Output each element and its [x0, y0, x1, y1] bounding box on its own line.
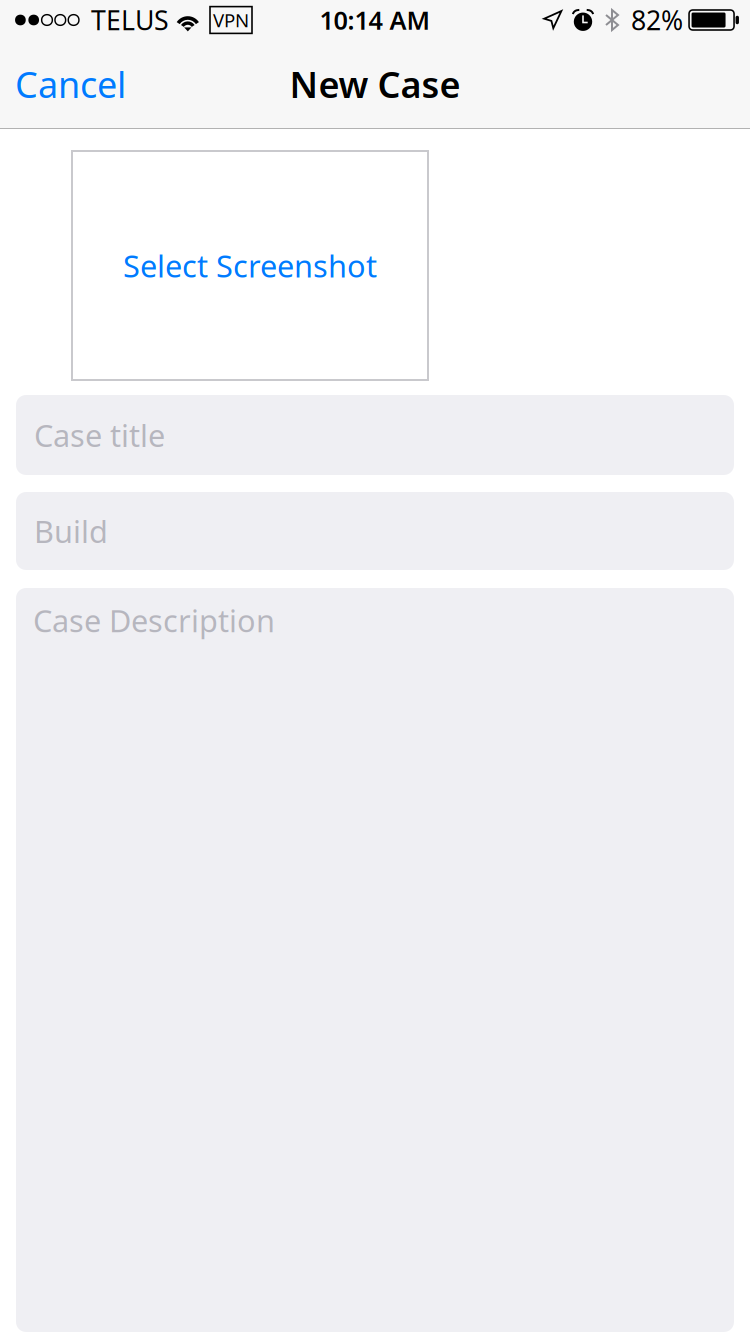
staticText: Case Description [33, 600, 275, 641]
staticText: 82% [631, 2, 683, 38]
staticText: Cancel [15, 60, 126, 108]
staticText: Select Screenshot [123, 245, 377, 286]
staticText: New Case [289, 60, 460, 108]
button[interactable]: Cancel [0, 40, 141, 128]
staticText: Build [34, 511, 108, 551]
staticText: TELUS [91, 2, 169, 38]
staticText: VPN [213, 8, 249, 32]
button[interactable]: Select Screenshot [72, 151, 428, 380]
staticText: Case title [34, 415, 165, 455]
staticText: 10:14 AM [319, 3, 430, 37]
button[interactable]: Case title [16, 395, 734, 475]
button[interactable]: Build [16, 492, 734, 570]
